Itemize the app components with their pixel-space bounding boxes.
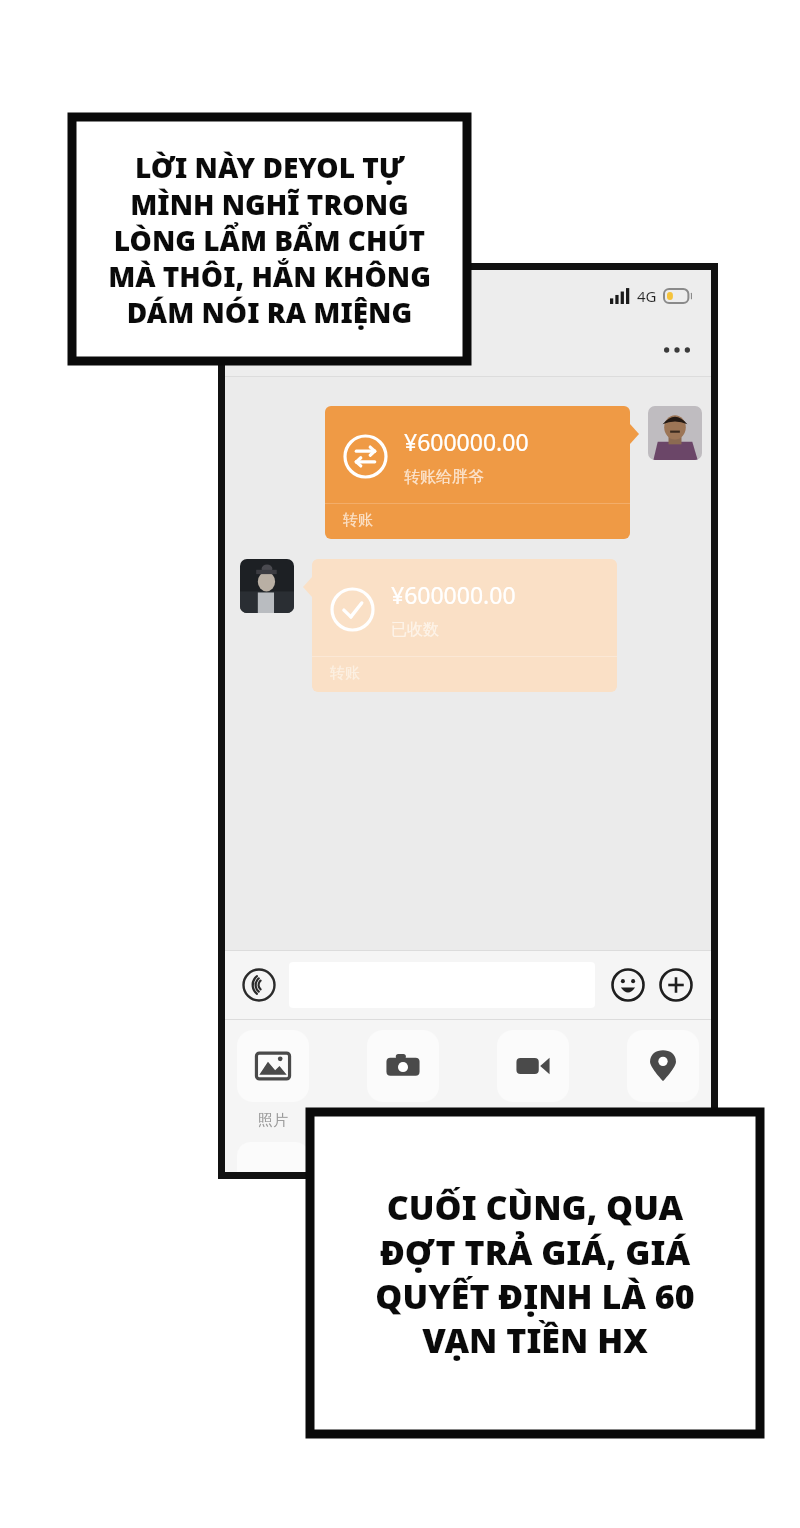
button[interactable]: Emoji [607,964,649,1006]
staticText: LỜI NÀY DEYOL TỰ MÌNH NGHĨ TRONG LÒNG LẨ… [108,148,431,331]
button[interactable]: 照片 [237,1030,309,1102]
button[interactable]: More options [657,330,697,370]
staticText: 转账给胖爷 [404,467,484,487]
staticText: 已收数 [391,620,439,640]
staticText: 转账 [330,664,360,683]
button[interactable]: Add attachment [655,964,697,1006]
staticText: CUỐI CÙNG, QUA ĐỢT TRẢ GIÁ, GIÁ QUYẾT ĐỊ… [375,1184,695,1363]
button[interactable]: 拍摄 [367,1030,439,1102]
button[interactable]: Recipient avatar [240,559,294,613]
button[interactable]: More action [237,1142,309,1172]
button[interactable]: ¥600000.00 [325,406,630,539]
staticText: 位置 [648,1111,678,1130]
staticText: 视频 [518,1111,548,1130]
staticText: 拍摄 [388,1111,418,1130]
staticText: 4G [637,286,657,306]
button[interactable]: Voice message [239,965,279,1005]
staticText: 转账 [343,511,373,530]
staticText: ¥600000.00 [404,426,529,457]
button[interactable]: 视频 [497,1030,569,1102]
button[interactable]: ¥600000.00 [312,559,617,692]
button[interactable]: Sender avatar [648,406,702,460]
staticText: 照片 [258,1111,288,1130]
button[interactable]: 位置 [627,1030,699,1102]
staticText: ¥600000.00 [391,579,516,610]
